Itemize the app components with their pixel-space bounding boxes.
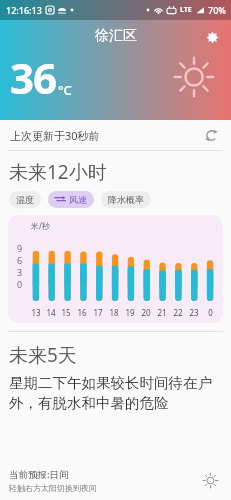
staticText: 9 (17, 242, 23, 254)
staticText: LTE (180, 5, 192, 15)
staticText: 当前预报:日间 (9, 468, 69, 481)
staticText: 0 (17, 278, 23, 290)
staticText: 米/秒 (31, 220, 50, 231)
staticText: 13 (31, 307, 41, 318)
staticText: 上次更新于30秒前 (10, 128, 100, 143)
button[interactable]: 风速 (48, 191, 94, 208)
button[interactable]: 降水概率 (101, 191, 151, 208)
staticText: 15 (61, 307, 71, 318)
staticText: 未来5天 (9, 342, 77, 368)
button[interactable]: Sunny (171, 54, 217, 100)
staticText: 降水概率 (108, 194, 144, 205)
staticText: 23 (189, 307, 199, 318)
button[interactable]: 米/秒 (8, 215, 223, 323)
button[interactable]: 温度 (9, 191, 41, 208)
staticText: 21 (157, 307, 167, 318)
button[interactable]: Toggle day or night (198, 468, 222, 492)
staticText: 14 (46, 307, 56, 318)
staticText: 轻触右方太阳切换到夜间 (9, 483, 97, 493)
staticText: 22 (173, 307, 183, 318)
staticText: 18 (109, 307, 119, 318)
staticText: 12:16:13 (6, 4, 42, 16)
button[interactable]: 上次更新于30秒前 (0, 120, 231, 150)
staticText: 温度 (16, 194, 34, 205)
staticText: 6 (17, 254, 23, 266)
staticText: °C (58, 81, 72, 99)
staticText: 17 (93, 307, 103, 318)
staticText: 0 (208, 307, 213, 318)
button[interactable]: 当前预报:日间 (0, 460, 231, 500)
staticText: 16 (77, 307, 87, 318)
staticText: 风速 (69, 194, 87, 205)
staticText: 3 (17, 266, 23, 278)
button[interactable]: 未来5天 (0, 332, 231, 412)
staticText: 20 (141, 307, 151, 318)
staticText: 36 (10, 49, 57, 106)
staticText: 70% (208, 4, 226, 16)
button[interactable]: Settings (199, 24, 225, 50)
staticText: 未来12小时 (9, 159, 107, 185)
button[interactable]: Refresh (201, 125, 221, 145)
staticText: 徐汇区 (95, 27, 137, 45)
staticText: 星期二下午如果较长时间待在户外，有脱水和中暑的危险 (9, 374, 222, 412)
staticText: 19 (125, 307, 135, 318)
